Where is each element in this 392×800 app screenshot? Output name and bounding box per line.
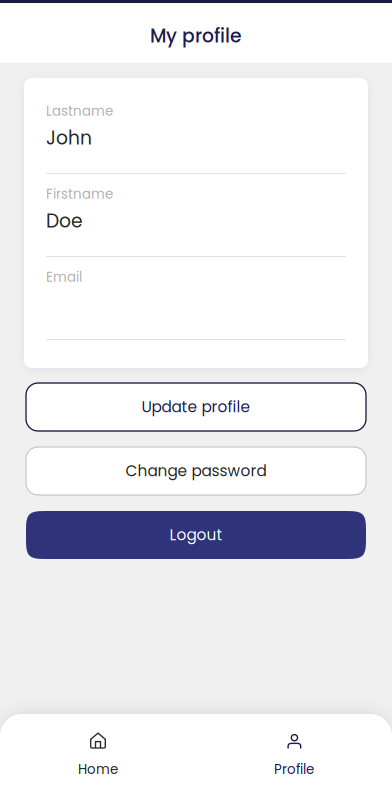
staticText: Update profile — [141, 396, 250, 418]
staticText: Email — [46, 268, 82, 286]
staticText: John — [46, 125, 92, 151]
staticText: Firstname — [46, 185, 113, 203]
button[interactable]: Home — [0, 714, 196, 800]
button[interactable]: Logout — [26, 511, 366, 559]
staticText: Home — [78, 760, 118, 779]
staticText: Logout — [169, 524, 222, 546]
button[interactable]: Change password — [26, 447, 366, 495]
staticText: My profile — [150, 23, 242, 49]
staticText: Profile — [274, 760, 314, 779]
staticText: Lastname — [46, 102, 113, 120]
button[interactable]: Profile — [196, 714, 392, 800]
staticText: Change password — [125, 460, 266, 482]
button[interactable]: Update profile — [26, 383, 366, 431]
staticText: Doe — [46, 208, 83, 234]
